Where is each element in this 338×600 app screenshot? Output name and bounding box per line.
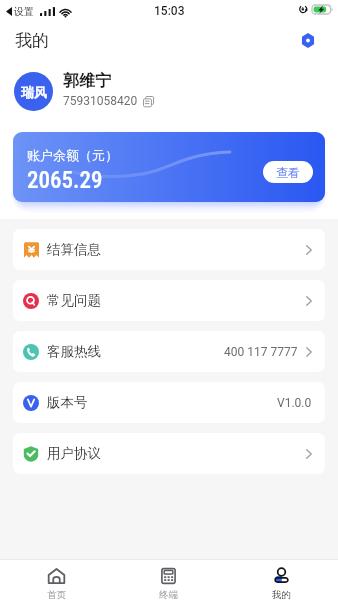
- staticText: 我的: [15, 30, 49, 51]
- button[interactable]: 我的: [225, 560, 338, 600]
- staticText: 用户协议: [47, 445, 101, 462]
- button[interactable]: 版本号: [13, 382, 325, 423]
- staticText: 版本号: [47, 394, 88, 411]
- staticText: 结算信息: [47, 241, 101, 258]
- button[interactable]: 用户协议: [13, 433, 325, 474]
- button[interactable]: 查看: [263, 161, 313, 183]
- staticText: 查看: [276, 165, 300, 180]
- button[interactable]: 终端: [112, 560, 225, 600]
- staticText: 瑞风: [21, 84, 47, 100]
- staticText: V1.0.0: [277, 396, 312, 410]
- staticText: 客服热线: [47, 343, 101, 360]
- staticText: 首页: [47, 589, 66, 600]
- staticText: 郭维宁: [63, 71, 111, 91]
- staticText: 我的: [272, 589, 291, 600]
- staticText: 设置: [14, 5, 34, 18]
- staticText: 400 117 7777: [224, 345, 298, 359]
- button[interactable]: Copy: [143, 96, 154, 107]
- button[interactable]: Settings: [295, 27, 321, 53]
- button[interactable]: 结算信息: [13, 229, 325, 270]
- button[interactable]: 首页: [0, 560, 112, 600]
- staticText: 15:03: [154, 4, 185, 18]
- staticText: 75931058420: [63, 94, 138, 108]
- button[interactable]: 客服热线: [13, 331, 325, 372]
- staticText: 账户余额（元）: [27, 147, 118, 163]
- button[interactable]: 常见问题: [13, 280, 325, 321]
- staticText: 终端: [159, 589, 178, 600]
- staticText: 2065.29: [27, 167, 103, 194]
- staticText: 常见问题: [47, 292, 101, 309]
- button[interactable]: 账户余额（元）: [13, 132, 325, 202]
